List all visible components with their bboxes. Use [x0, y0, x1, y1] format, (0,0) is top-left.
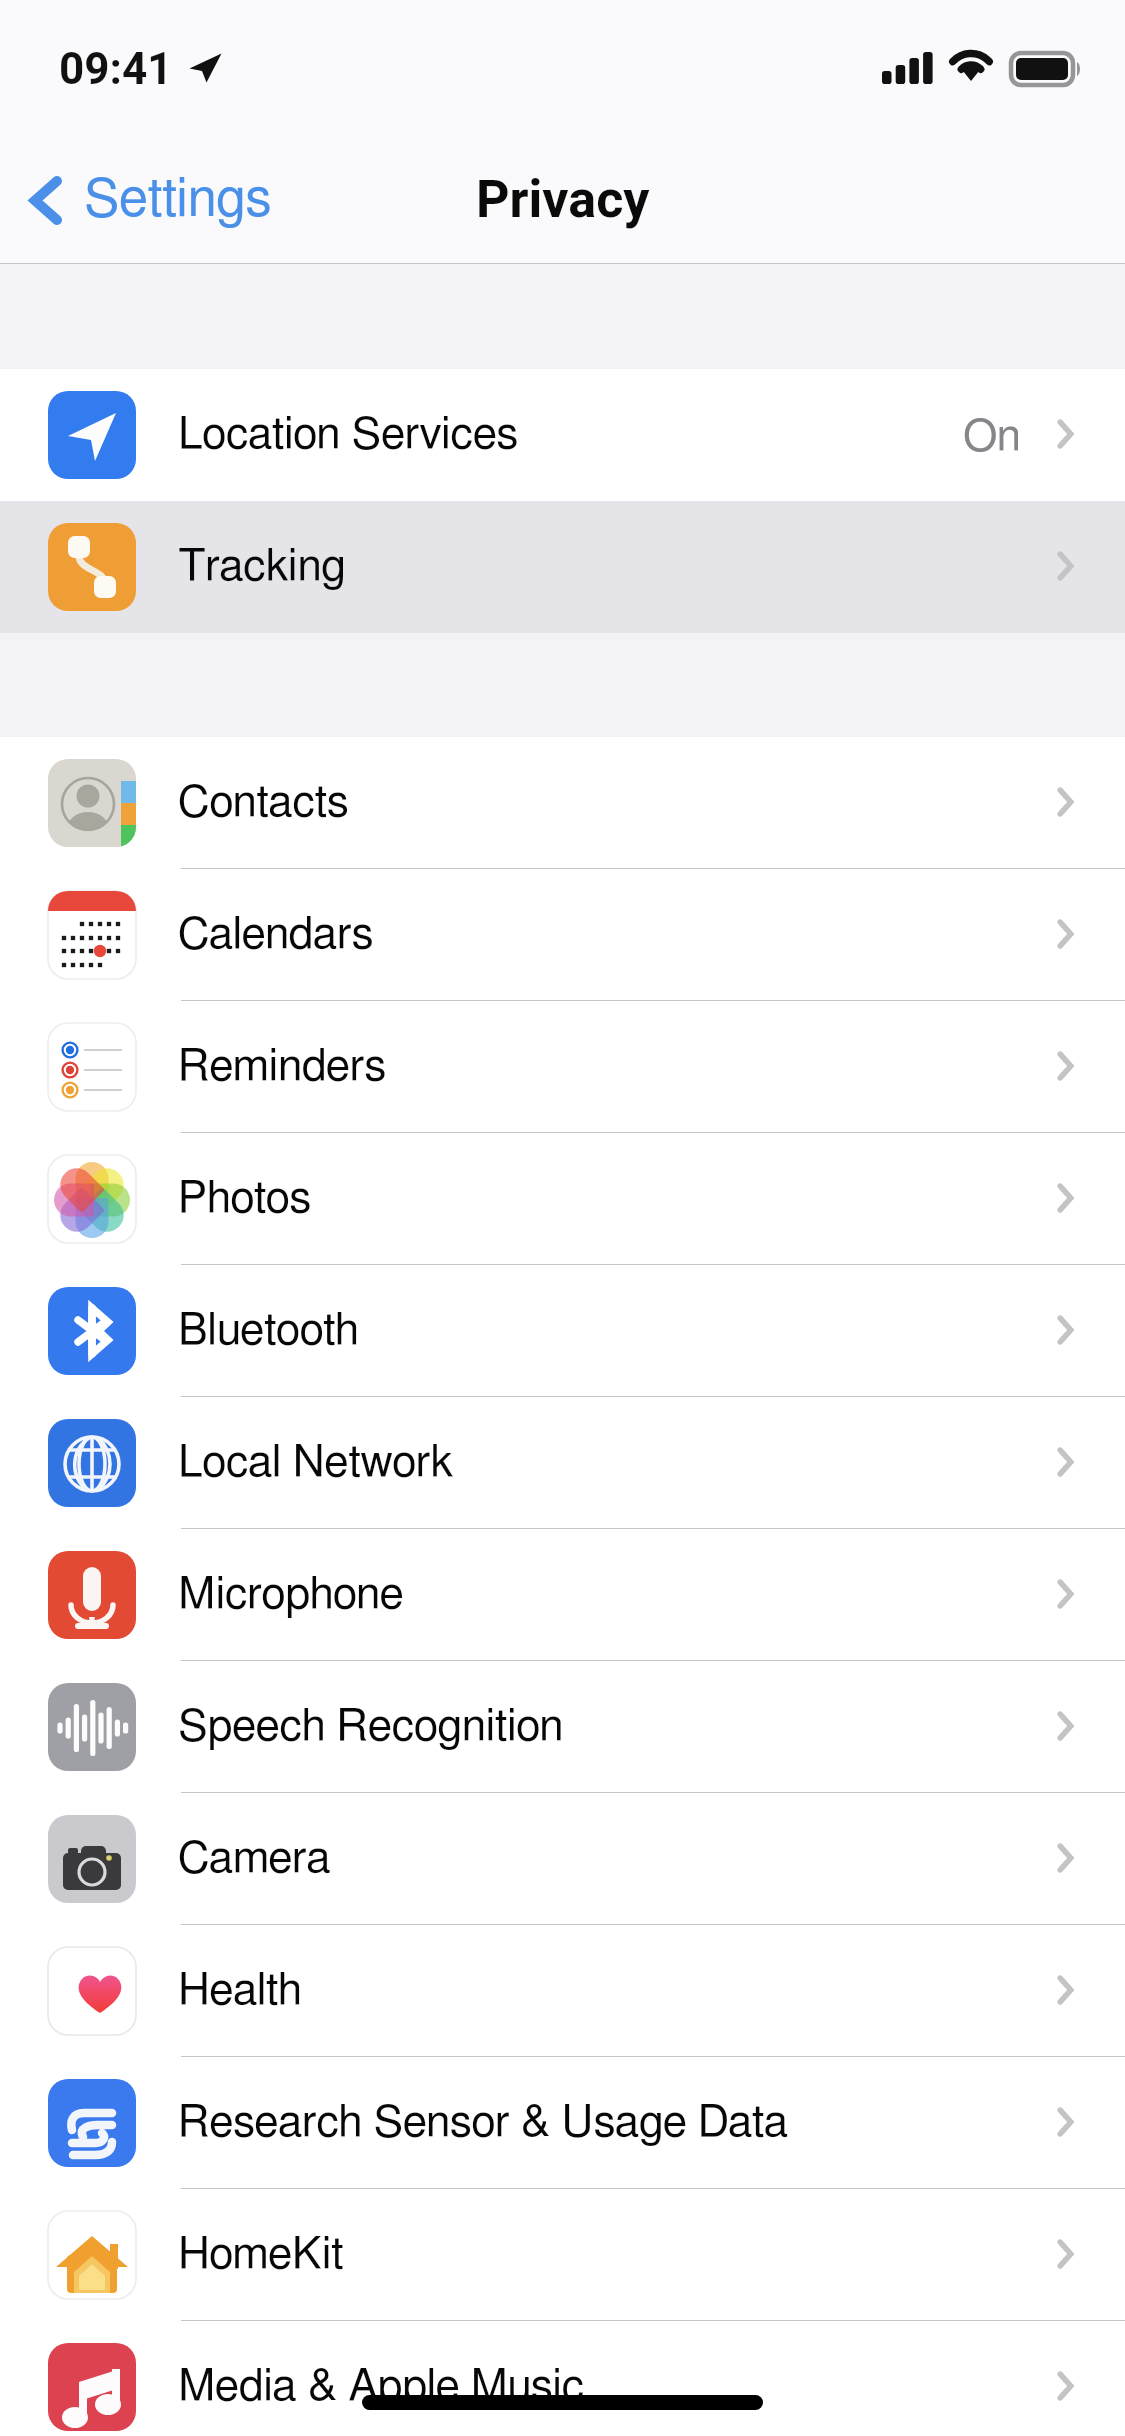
button[interactable]: Media & Apple Music [0, 2321, 1125, 2436]
staticText: Local Network [178, 1440, 454, 1484]
button[interactable]: Photos [0, 1133, 1125, 1265]
staticText: Settings [84, 174, 272, 227]
staticText: 09:41 [59, 43, 173, 95]
staticText: Contacts [178, 780, 349, 824]
staticText: Microphone [178, 1572, 404, 1616]
button[interactable]: Research Sensor & Usage Data [0, 2057, 1125, 2189]
button[interactable]: HomeKit [0, 2189, 1125, 2321]
button[interactable]: Speech Recognition [0, 1661, 1125, 1793]
staticText: Calendars [178, 912, 374, 956]
staticText: On [963, 415, 1021, 459]
staticText: Privacy [476, 169, 650, 230]
button[interactable]: Reminders [0, 1001, 1125, 1133]
staticText: Research Sensor & Usage Data [178, 2100, 789, 2144]
button[interactable]: Back to Settings [0, 148, 288, 248]
staticText: Bluetooth [178, 1308, 359, 1352]
button[interactable]: Contacts [0, 737, 1125, 869]
staticText: Speech Recognition [178, 1704, 564, 1748]
staticText: Location Services [178, 412, 519, 456]
button[interactable]: Location Services [0, 369, 1125, 501]
button[interactable]: Calendars [0, 869, 1125, 1001]
button[interactable]: Microphone [0, 1529, 1125, 1661]
staticText: Photos [178, 1176, 312, 1220]
staticText: Tracking [178, 544, 346, 588]
button[interactable]: Camera [0, 1793, 1125, 1925]
button[interactable]: Local Network [0, 1397, 1125, 1529]
staticText: Camera [178, 1836, 331, 1880]
button[interactable]: Bluetooth [0, 1265, 1125, 1397]
staticText: Health [178, 1968, 302, 2012]
staticText: Reminders [178, 1044, 387, 1088]
button[interactable]: Tracking [0, 501, 1125, 633]
button[interactable]: Health [0, 1925, 1125, 2057]
staticText: Media & Apple Music [178, 2364, 585, 2408]
staticText: HomeKit [178, 2232, 344, 2276]
